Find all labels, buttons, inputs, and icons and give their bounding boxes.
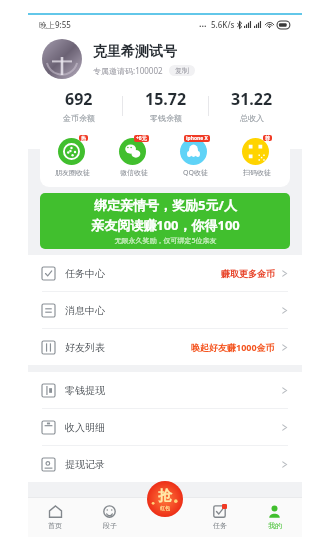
staticText: 扫码收徒 [243,168,271,177]
button[interactable]: iphone X [164,135,226,178]
staticText: 唤起好友赚1000金币 [191,341,275,353]
button[interactable]: 抢红包 [147,481,183,517]
staticText: 31.22 [231,88,273,110]
staticText: 绑定亲情号，奖励5元/人 [94,196,237,214]
button[interactable]: +6元 [103,135,164,177]
button[interactable]: 我的 [247,497,302,537]
staticText: 提现记录 [65,458,105,471]
staticText: 克里希测试号 [93,43,177,61]
button[interactable]: 31.22 [209,88,294,123]
staticText: iphone X [186,135,208,142]
staticText: 专属邀请码:100002 [93,65,163,76]
staticText: 我的 [268,521,282,530]
button[interactable]: 复制 [169,65,195,76]
staticText: 朋友圈收徒 [55,168,90,177]
button[interactable]: 任务中心 [28,255,302,291]
staticText: 金币余额 [63,113,95,123]
button[interactable]: 好友列表 [28,329,302,365]
staticText: 荐 [265,135,270,141]
button[interactable]: 任务 [192,497,247,537]
button[interactable]: 收入明细 [28,409,302,445]
button[interactable]: 首页 [28,497,82,537]
button[interactable]: 提现记录 [28,446,302,482]
staticText: +6元 [136,135,147,142]
staticText: 红包 [160,505,170,511]
staticText: 复制 [175,66,189,75]
staticText: 692 [65,88,93,110]
button[interactable]: 消息中心 [28,292,302,328]
staticText: 好友列表 [65,341,105,354]
staticText: QQ收徒 [183,168,208,178]
staticText: 消息中心 [65,304,105,317]
staticText: 热 [81,135,86,141]
staticText: 零钱提现 [65,384,105,397]
staticText: 段子 [103,521,117,530]
staticText: 零钱余额 [150,113,182,123]
staticText: 微信收徒 [120,168,148,177]
button[interactable]: 克里希测试号 [42,39,288,79]
button[interactable]: 段子 [82,497,137,537]
staticText: 抢 [158,487,172,505]
staticText: 总收入 [240,113,264,123]
staticText: 亲友阅读赚100，你得100 [91,216,240,234]
staticText: 无限永久奖励，仅可绑定5位亲友 [114,236,217,246]
button[interactable]: 零钱提现 [28,372,302,408]
staticText: 晚上9:55 [39,19,71,30]
staticText: 15.72 [145,88,187,110]
button[interactable]: 692 [36,88,122,123]
staticText: 任务 [213,521,227,530]
staticText: ··· [199,19,207,31]
staticText: 收入明细 [65,421,105,434]
staticText: 任务中心 [65,267,105,280]
button[interactable]: 荐 [226,135,288,177]
button[interactable]: 热 [42,135,103,177]
staticText: 5.6K/s [211,19,235,30]
button[interactable]: 15.72 [123,88,208,123]
staticText: 首页 [48,521,62,530]
staticText: 赚取更多金币 [221,268,275,279]
button[interactable]: 绑定亲情号，奖励5元/人 [40,193,290,249]
